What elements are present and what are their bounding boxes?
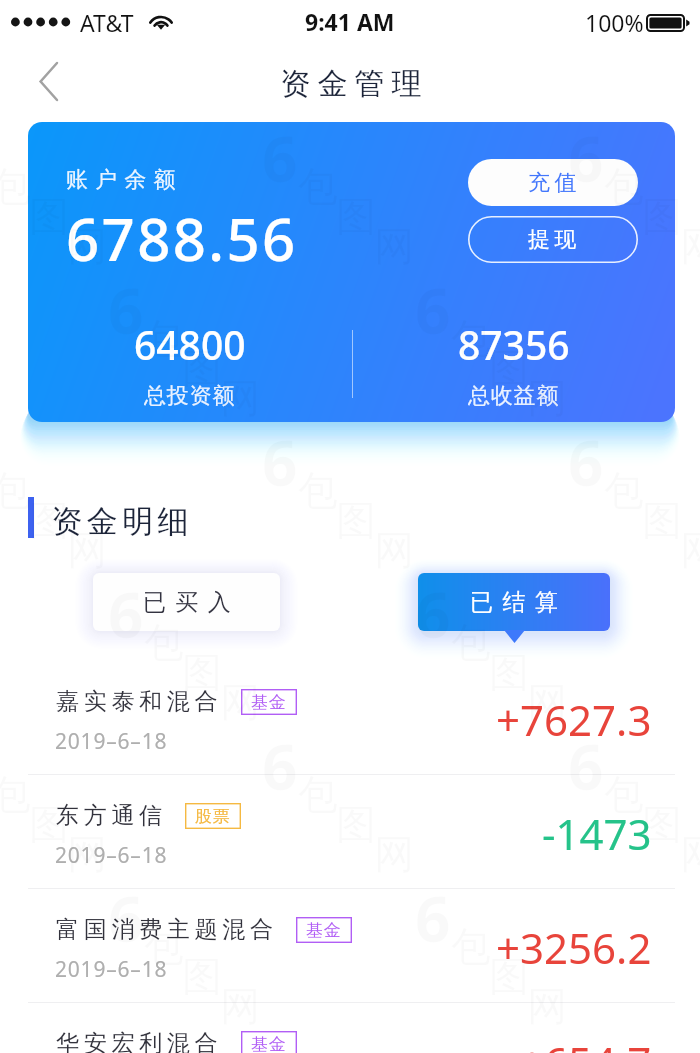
staticText: AT&T [80, 7, 134, 38]
button[interactable]: 已买入 [93, 573, 280, 631]
staticText: 包 [451, 313, 491, 363]
staticText: 东方通信 [56, 801, 167, 830]
staticText: 网 [220, 981, 260, 1031]
staticText: 总投资额 [144, 382, 236, 408]
staticText: 包 [144, 313, 184, 363]
button[interactable]: 嘉实泰和混合 [0, 661, 700, 774]
staticText: 网 [527, 677, 567, 727]
staticText: 资金明细 [49, 502, 191, 541]
staticText: 华安宏利混合 [56, 1029, 223, 1053]
staticText: 网 [527, 981, 567, 1031]
staticText: 包 [0, 465, 31, 515]
staticText: 64800 [134, 318, 246, 371]
staticText: 包 [451, 617, 491, 667]
staticText: 网 [527, 373, 567, 423]
button[interactable]: 东方通信 [0, 775, 700, 888]
staticText: 图 [489, 951, 529, 1001]
staticText: 图 [29, 799, 69, 849]
staticText: +654.7 [520, 1033, 652, 1053]
staticText: 资金管理 [277, 65, 425, 103]
staticText: 基金 [251, 692, 287, 713]
button[interactable]: 华安宏利混合 [0, 1003, 700, 1053]
staticText: 图 [489, 343, 529, 393]
staticText: 6 [262, 724, 298, 808]
staticText: 图 [182, 343, 222, 393]
button[interactable]: 账户余额 [28, 122, 675, 422]
staticText: 图 [642, 191, 682, 241]
staticText: 图 [489, 647, 529, 697]
staticText: 2019–6–18 [55, 955, 168, 984]
staticText: 嘉实泰和混合 [56, 687, 223, 716]
staticText: +3256.2 [496, 919, 652, 976]
staticText: 6 [568, 420, 604, 504]
staticText: 网 [220, 677, 260, 727]
staticText: 网 [67, 829, 107, 879]
staticText: 87356 [458, 318, 570, 371]
staticText: 6 [415, 572, 451, 656]
staticText: 6 [108, 572, 144, 656]
staticText: 网 [67, 525, 107, 575]
staticText: 富国消费主题混合 [56, 915, 278, 944]
staticText: -1473 [542, 805, 652, 862]
staticText: 2019–6–18 [55, 727, 168, 756]
staticText: 6 [415, 876, 451, 960]
button[interactable]: 提现 [468, 216, 638, 263]
staticText: 6 [108, 876, 144, 960]
staticText: 网 [220, 373, 260, 423]
staticText: 包 [604, 161, 644, 211]
staticText: 网 [67, 221, 107, 271]
staticText: 6 [568, 116, 604, 200]
staticText: +7627.3 [496, 691, 652, 748]
button[interactable]: 富国消费主题混合 [0, 889, 700, 1002]
staticText: 图 [182, 647, 222, 697]
staticText: 充值 [528, 169, 582, 197]
staticText: 基金 [251, 1034, 287, 1053]
staticText: 已买入 [143, 588, 241, 617]
staticText: 总收益额 [468, 382, 560, 408]
staticText: 6 [262, 116, 298, 200]
staticText: 图 [642, 799, 682, 849]
staticText: 2019–6–18 [55, 841, 168, 870]
staticText: 包 [0, 161, 31, 211]
button[interactable]: Back [22, 54, 76, 108]
staticText: 6 [262, 420, 298, 504]
staticText: 账户余额 [66, 166, 183, 194]
staticText: 9:41 AM [305, 6, 395, 37]
button[interactable]: 已结算 [418, 573, 610, 631]
staticText: 6 [568, 724, 604, 808]
staticText: 6 [108, 268, 144, 352]
staticText: 包 [144, 921, 184, 971]
staticText: 6788.56 [66, 199, 298, 278]
staticText: 100% [585, 7, 644, 38]
staticText: 提现 [528, 226, 582, 254]
staticText: 包 [144, 617, 184, 667]
staticText: 股票 [195, 806, 231, 827]
staticText: 图 [29, 495, 69, 545]
staticText: 已结算 [470, 588, 568, 617]
button[interactable]: 充值 [468, 159, 638, 206]
staticText: 基金 [306, 920, 342, 941]
